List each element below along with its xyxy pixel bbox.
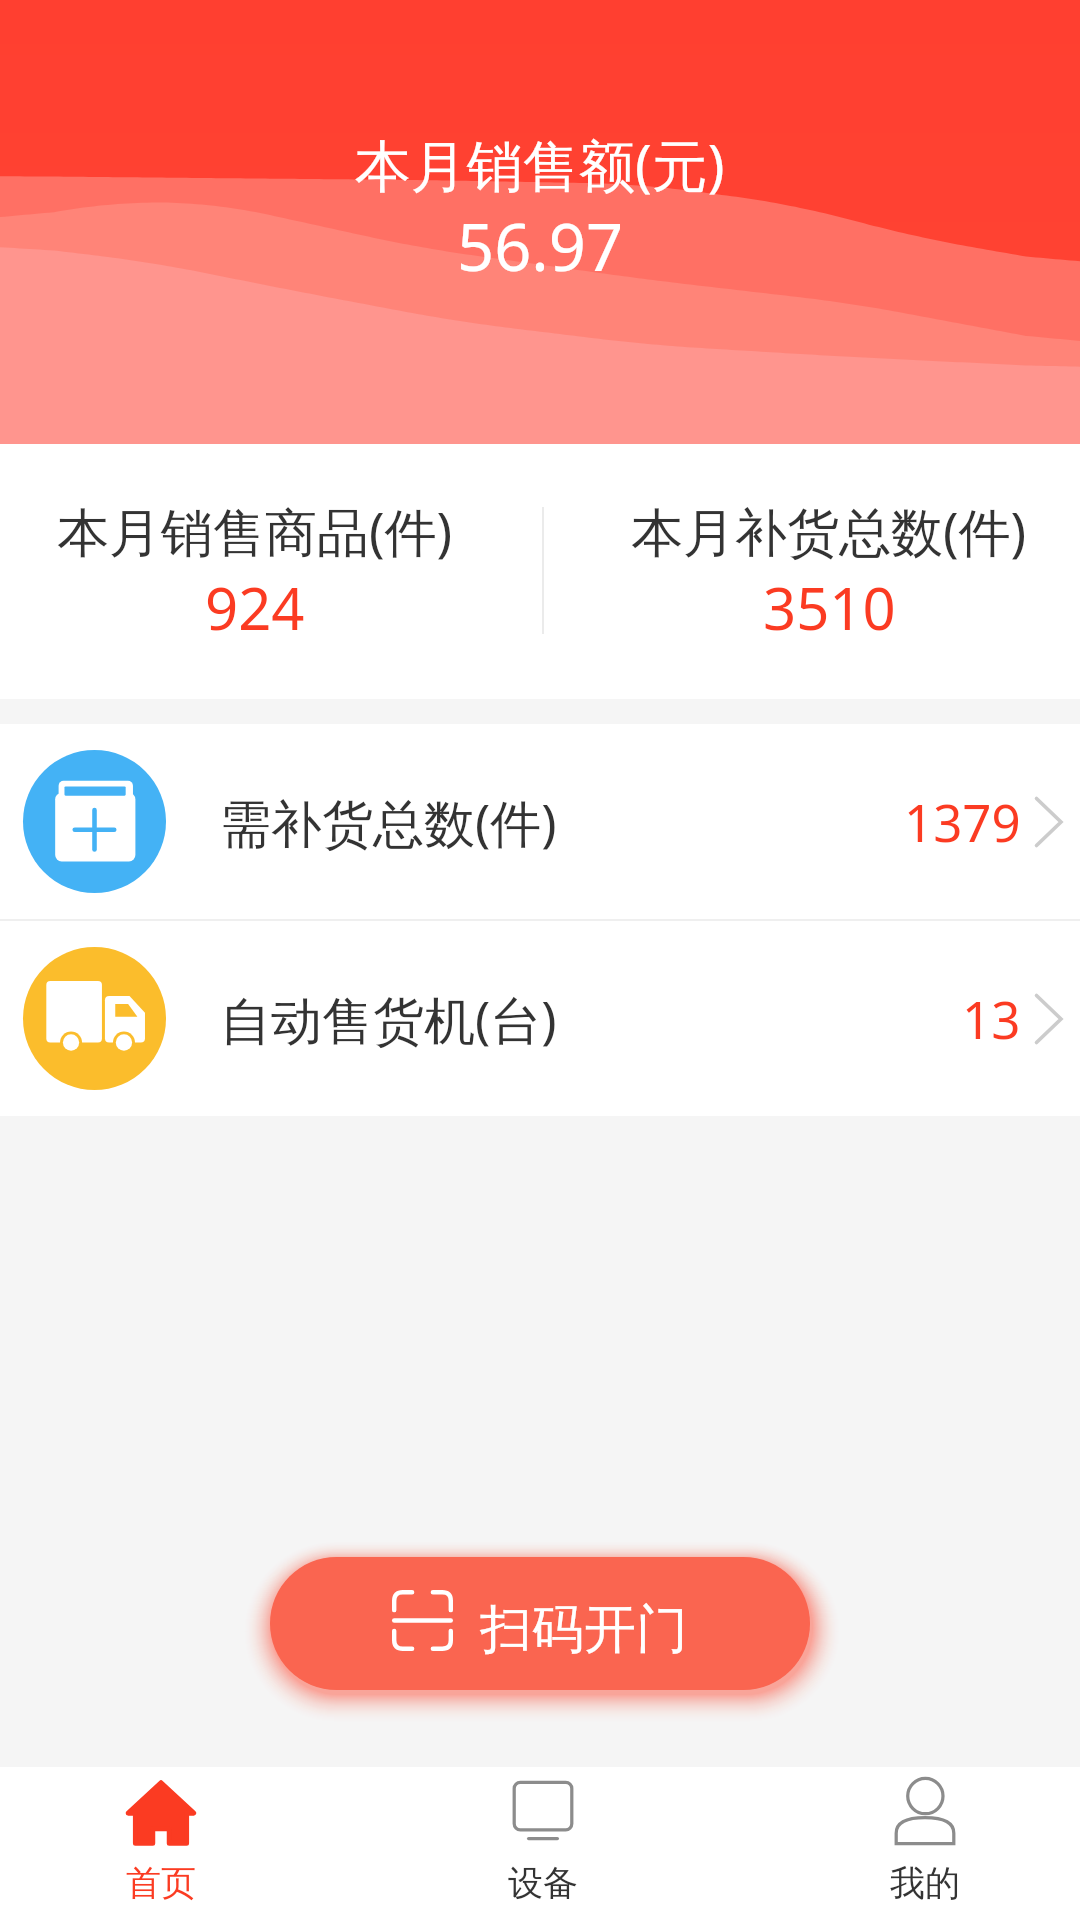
staticText: 扫码开门 <box>480 1597 688 1663</box>
button[interactable]: Devices <box>433 1767 653 1920</box>
staticText: 3510 <box>763 568 896 647</box>
button[interactable]: Profile <box>815 1767 1035 1920</box>
staticText: 本月销售额(元) <box>355 126 725 202</box>
button[interactable]: 本月补货总数(件) <box>569 495 1080 647</box>
button[interactable]: Home <box>51 1767 271 1920</box>
staticText: 我的 <box>890 1861 960 1905</box>
staticText: 1379 <box>904 787 1021 856</box>
staticText: 924 <box>205 568 305 647</box>
staticText: 首页 <box>126 1861 196 1905</box>
staticText: 56.97 <box>457 202 624 291</box>
staticText: 设备 <box>508 1861 578 1905</box>
button[interactable]: 自动售货机(台) <box>0 921 1080 1116</box>
staticText: 本月补货总数(件) <box>631 495 1027 566</box>
button[interactable]: 扫码开门 <box>270 1557 810 1690</box>
staticText: 需补货总数(件) <box>220 787 557 857</box>
button[interactable]: 需补货总数(件) <box>0 724 1080 919</box>
staticText: 本月销售商品(件) <box>57 495 453 566</box>
staticText: 13 <box>962 984 1021 1053</box>
button[interactable]: 本月销售商品(件) <box>0 495 515 647</box>
staticText: 自动售货机(台) <box>220 984 557 1054</box>
